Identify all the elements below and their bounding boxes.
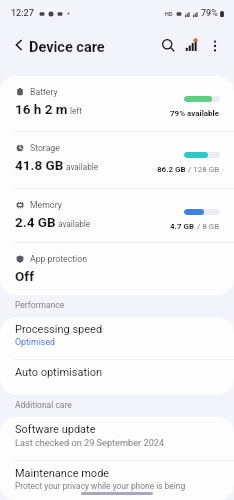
staticText: Performance — [15, 300, 65, 310]
staticText: Device care — [29, 39, 105, 56]
staticText: available — [64, 162, 99, 172]
button[interactable]: Diagnostics — [180, 33, 204, 57]
staticText: / 128 GB — [186, 165, 220, 174]
staticText: Software update — [15, 423, 96, 436]
button[interactable]: Memory — [0, 189, 234, 242]
button[interactable]: Auto optimisation — [0, 360, 234, 395]
staticText: 12:27 — [11, 8, 34, 19]
button[interactable]: Battery — [0, 76, 234, 131]
staticText: Storage — [30, 143, 60, 153]
button[interactable]: Processing speed — [0, 317, 234, 359]
staticText: / 8 GB — [195, 222, 220, 231]
staticText: 4.7 GB — [170, 222, 195, 231]
staticText: Optimised — [15, 337, 56, 347]
button[interactable]: More options — [204, 35, 225, 56]
button[interactable]: Navigate up — [7, 33, 31, 57]
staticText: 86.2 GB — [157, 165, 186, 174]
button[interactable]: Software update — [0, 417, 234, 460]
staticText: 79% available — [170, 109, 220, 118]
staticText: Additional care — [15, 400, 72, 410]
button[interactable]: Maintenance mode — [0, 461, 234, 500]
staticText: 16 h 2 m — [15, 101, 68, 117]
staticText: Auto optimisation — [15, 366, 103, 379]
staticText: 41.8 GB — [15, 157, 64, 173]
button[interactable]: Search — [156, 33, 180, 57]
staticText: Processing speed — [15, 323, 103, 336]
button[interactable]: App protection — [0, 243, 234, 295]
staticText: 2.4 GB — [15, 214, 56, 230]
staticText: Battery — [30, 87, 58, 97]
button[interactable]: Storage — [0, 132, 234, 188]
staticText: Off — [15, 268, 34, 284]
staticText: Memory — [30, 200, 62, 210]
staticText: available — [56, 219, 91, 229]
staticText: App protection — [30, 254, 87, 264]
staticText: Last checked on 29 September 2024 — [15, 437, 165, 448]
staticText: HD — [165, 11, 173, 17]
staticText: left — [68, 106, 82, 116]
staticText: Protect your privacy while your phone is… — [15, 481, 186, 491]
staticText: Maintenance mode — [15, 467, 110, 480]
staticText: 79% — [201, 8, 218, 19]
